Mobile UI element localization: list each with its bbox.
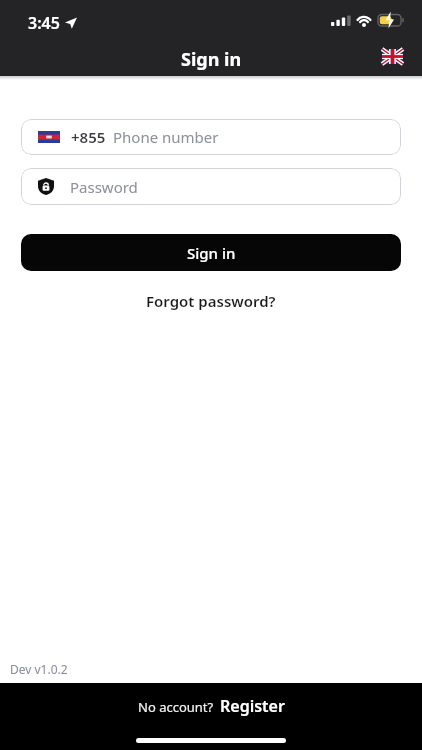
staticText: Password (70, 177, 138, 197)
staticText: Sign in (181, 47, 242, 72)
staticText: +855 (71, 127, 106, 147)
button[interactable]: Forgot password? (138, 289, 284, 313)
button[interactable]: Sign in (21, 234, 401, 271)
staticText: 3:45 (28, 12, 60, 34)
staticText: Dev v1.0.2 (10, 661, 68, 677)
button[interactable]: +855 (21, 119, 401, 155)
button[interactable]: No account? (138, 695, 285, 717)
button[interactable]: Password (21, 168, 401, 205)
button[interactable] (382, 49, 403, 64)
staticText: No account? (138, 698, 214, 716)
staticText: Register (220, 695, 285, 717)
staticText: Forgot password? (146, 291, 276, 311)
staticText: Phone number (113, 127, 219, 147)
staticText: Sign in (187, 243, 236, 263)
